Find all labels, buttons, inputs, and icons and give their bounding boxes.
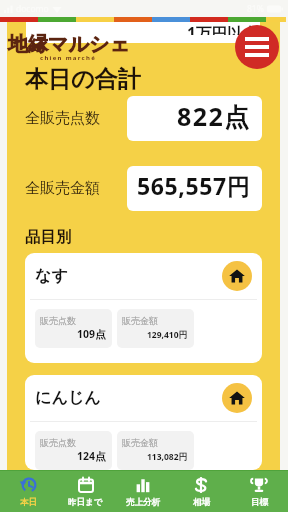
button[interactable]: 売上分析 [114,471,172,512]
staticText: 販売金額 [122,437,158,448]
button[interactable]: なす [25,253,262,363]
staticText: 822点 [177,99,251,133]
staticText: 目標 [251,497,268,508]
staticText: 本日の合計 [25,65,141,94]
staticText: 販売金額 [122,315,158,326]
staticText: 1万円以上 [187,22,258,35]
staticText: 販売点数 [40,437,76,448]
staticText: 124点 [77,449,106,463]
staticText: 全販売金額 [25,179,100,198]
button[interactable]: 相場 [172,471,230,512]
staticText: 109点 [77,327,106,341]
staticText: 売上分析 [126,497,160,508]
staticText: 販売点数 [40,315,76,326]
staticText: 品目別 [25,227,72,247]
button[interactable]: 昨日まで [57,471,114,512]
staticText: 129,410円 [147,329,188,341]
button[interactable]: Home [222,383,252,413]
staticText: 地縁マルシェ [8,32,130,57]
staticText: 565,557円 [137,170,251,201]
staticText: chien marché [40,54,97,62]
button[interactable]: 本日 [0,471,57,512]
staticText: 全販売点数 [25,109,100,128]
button[interactable]: Menu [235,25,279,69]
staticText: 昨日まで [68,497,103,508]
button[interactable]: 目標 [230,471,288,512]
staticText: にんじん [35,388,101,408]
staticText: 本日 [20,497,37,508]
button[interactable]: にんじん [25,375,262,470]
staticText: なす [35,266,68,286]
staticText: 113,082円 [147,451,188,463]
button[interactable]: Home [222,261,252,291]
staticText: 相場 [193,497,210,508]
